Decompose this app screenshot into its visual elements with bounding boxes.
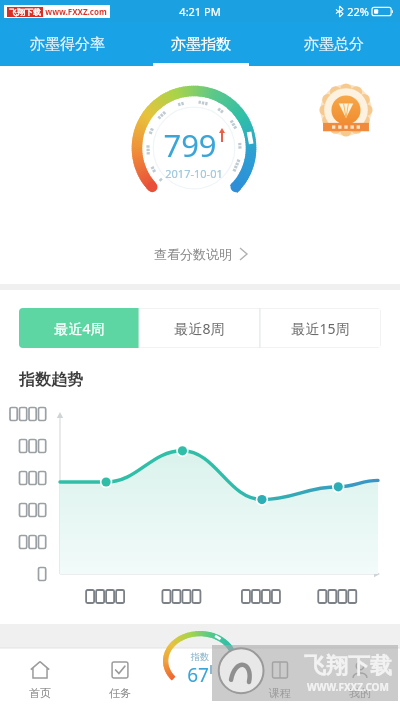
- staticText: 4:21 PM: [179, 4, 221, 19]
- button[interactable]: 查看分数说明: [154, 246, 247, 262]
- button[interactable]: 亦墨指数: [134, 22, 267, 66]
- staticText: 67: [187, 662, 209, 688]
- staticText: 最近4周: [54, 319, 105, 338]
- staticText: 亦墨得分率: [30, 35, 105, 54]
- staticText: 2017-10-01: [165, 166, 223, 181]
- staticText: 22%: [347, 4, 369, 19]
- button[interactable]: 最近4周: [19, 308, 139, 348]
- staticText: 799: [163, 124, 217, 166]
- button[interactable]: 亦墨得分率: [0, 22, 134, 66]
- staticText: www.FXXZ.com: [45, 6, 107, 17]
- staticText: 亦墨总分: [304, 35, 364, 54]
- button[interactable]: 优秀徽章: [318, 82, 374, 138]
- staticText: 指数趋势: [19, 370, 83, 390]
- staticText: 指数: [191, 651, 209, 662]
- button[interactable]: 我的: [320, 648, 400, 710]
- staticText: 最近15周: [291, 319, 350, 338]
- staticText: WWW.FXXZ.COM: [307, 680, 389, 694]
- staticText: 亦墨指数: [171, 35, 231, 54]
- staticText: 首页: [29, 686, 51, 700]
- staticText: 飞翔下载: [304, 652, 392, 680]
- button[interactable]: 课程: [240, 648, 320, 710]
- button[interactable]: 最近8周: [139, 308, 260, 348]
- staticText: 课程: [269, 686, 291, 700]
- button[interactable]: 任务: [80, 648, 160, 710]
- staticText: 最近8周: [174, 319, 225, 338]
- staticText: 查看分数说明: [154, 246, 232, 262]
- button[interactable]: 亦墨总分: [267, 22, 400, 66]
- staticText: 任务: [109, 686, 131, 700]
- staticText: 我的: [349, 686, 371, 700]
- staticText: 飞翔下载: [9, 7, 41, 17]
- button[interactable]: 首页: [0, 648, 80, 710]
- button[interactable]: 指数: [162, 630, 238, 692]
- button[interactable]: 最近15周: [260, 308, 381, 348]
